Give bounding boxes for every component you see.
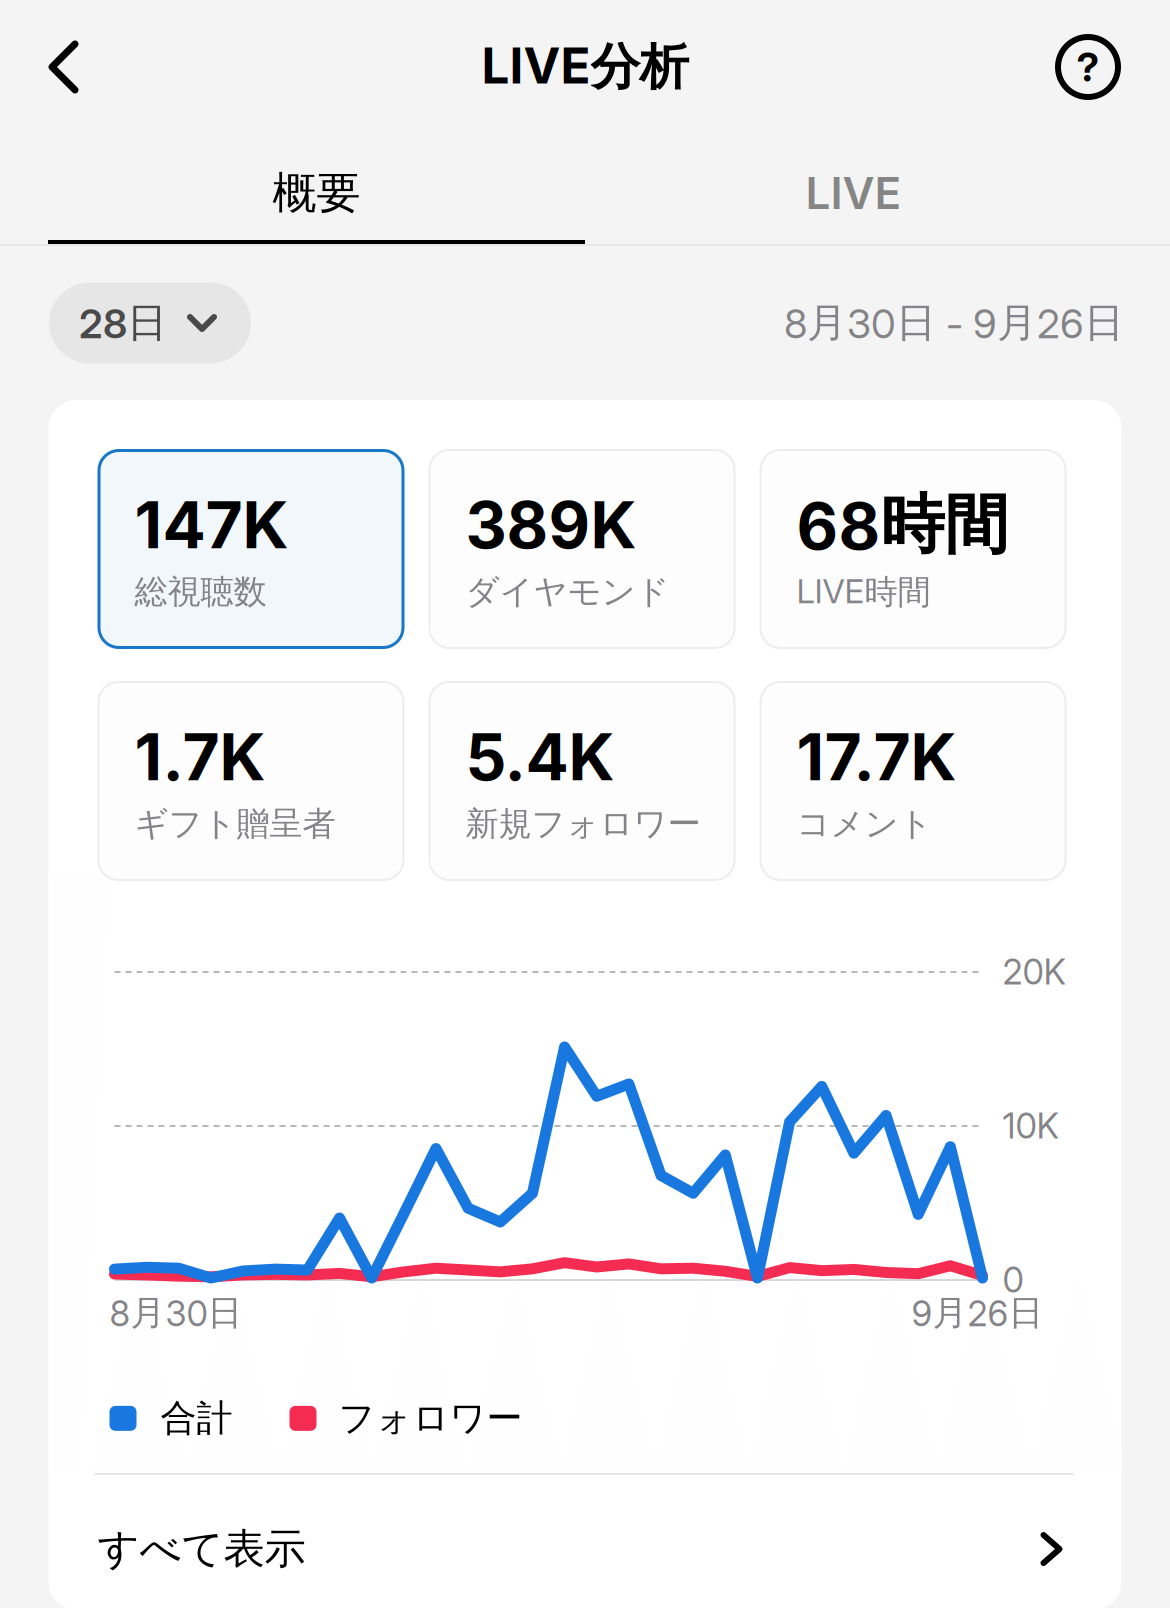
staticText: 10K [1002,1105,1058,1147]
staticText: 389K [465,486,636,564]
staticText: 20K [1002,951,1065,993]
button[interactable]: すべて表示 [48,1475,1121,1608]
button[interactable]: 戻る [16,1,112,133]
staticText: 8月30日 - 9月26日 [784,298,1124,348]
staticText: ギフト贈呈者 [134,803,335,845]
staticText: LIVE時間 [796,571,930,613]
staticText: 28日 [79,298,167,348]
staticText: ? [1076,43,1099,91]
staticText: 新規フォロワー [465,803,700,845]
staticText: すべて表示 [97,1523,305,1575]
staticText: 総視聴数 [134,571,266,613]
staticText: 8月30日 [109,1291,242,1335]
button[interactable]: 389K [428,449,735,649]
staticText: LIVE [805,166,901,220]
staticText: 1.7K [134,718,265,796]
button[interactable]: 1.7K [97,681,404,881]
staticText: 9月26日 [911,1291,1043,1335]
button[interactable]: 147K [97,449,404,649]
button[interactable]: ヘルプ [1036,1,1140,133]
staticText: 68時間 [796,485,1008,565]
staticText: 概要 [272,165,360,221]
staticText: 17.7K [796,718,956,796]
staticText: LIVE分析 [481,36,688,98]
staticText: 5.4K [465,718,614,796]
button[interactable]: 17.7K [759,681,1066,881]
staticText: ダイヤモンド [465,571,669,613]
button[interactable]: 28日 [49,282,251,363]
staticText: フォロワー [338,1396,522,1441]
button[interactable]: LIVE [585,134,1122,246]
staticText: 合計 [160,1396,232,1441]
button[interactable]: 5.4K [428,681,735,881]
button[interactable]: 68時間 [759,449,1066,649]
staticText: 147K [134,486,288,564]
staticText: コメント [796,803,932,845]
button[interactable]: 概要 [48,134,585,246]
staticText: 0 [1002,1259,1023,1301]
